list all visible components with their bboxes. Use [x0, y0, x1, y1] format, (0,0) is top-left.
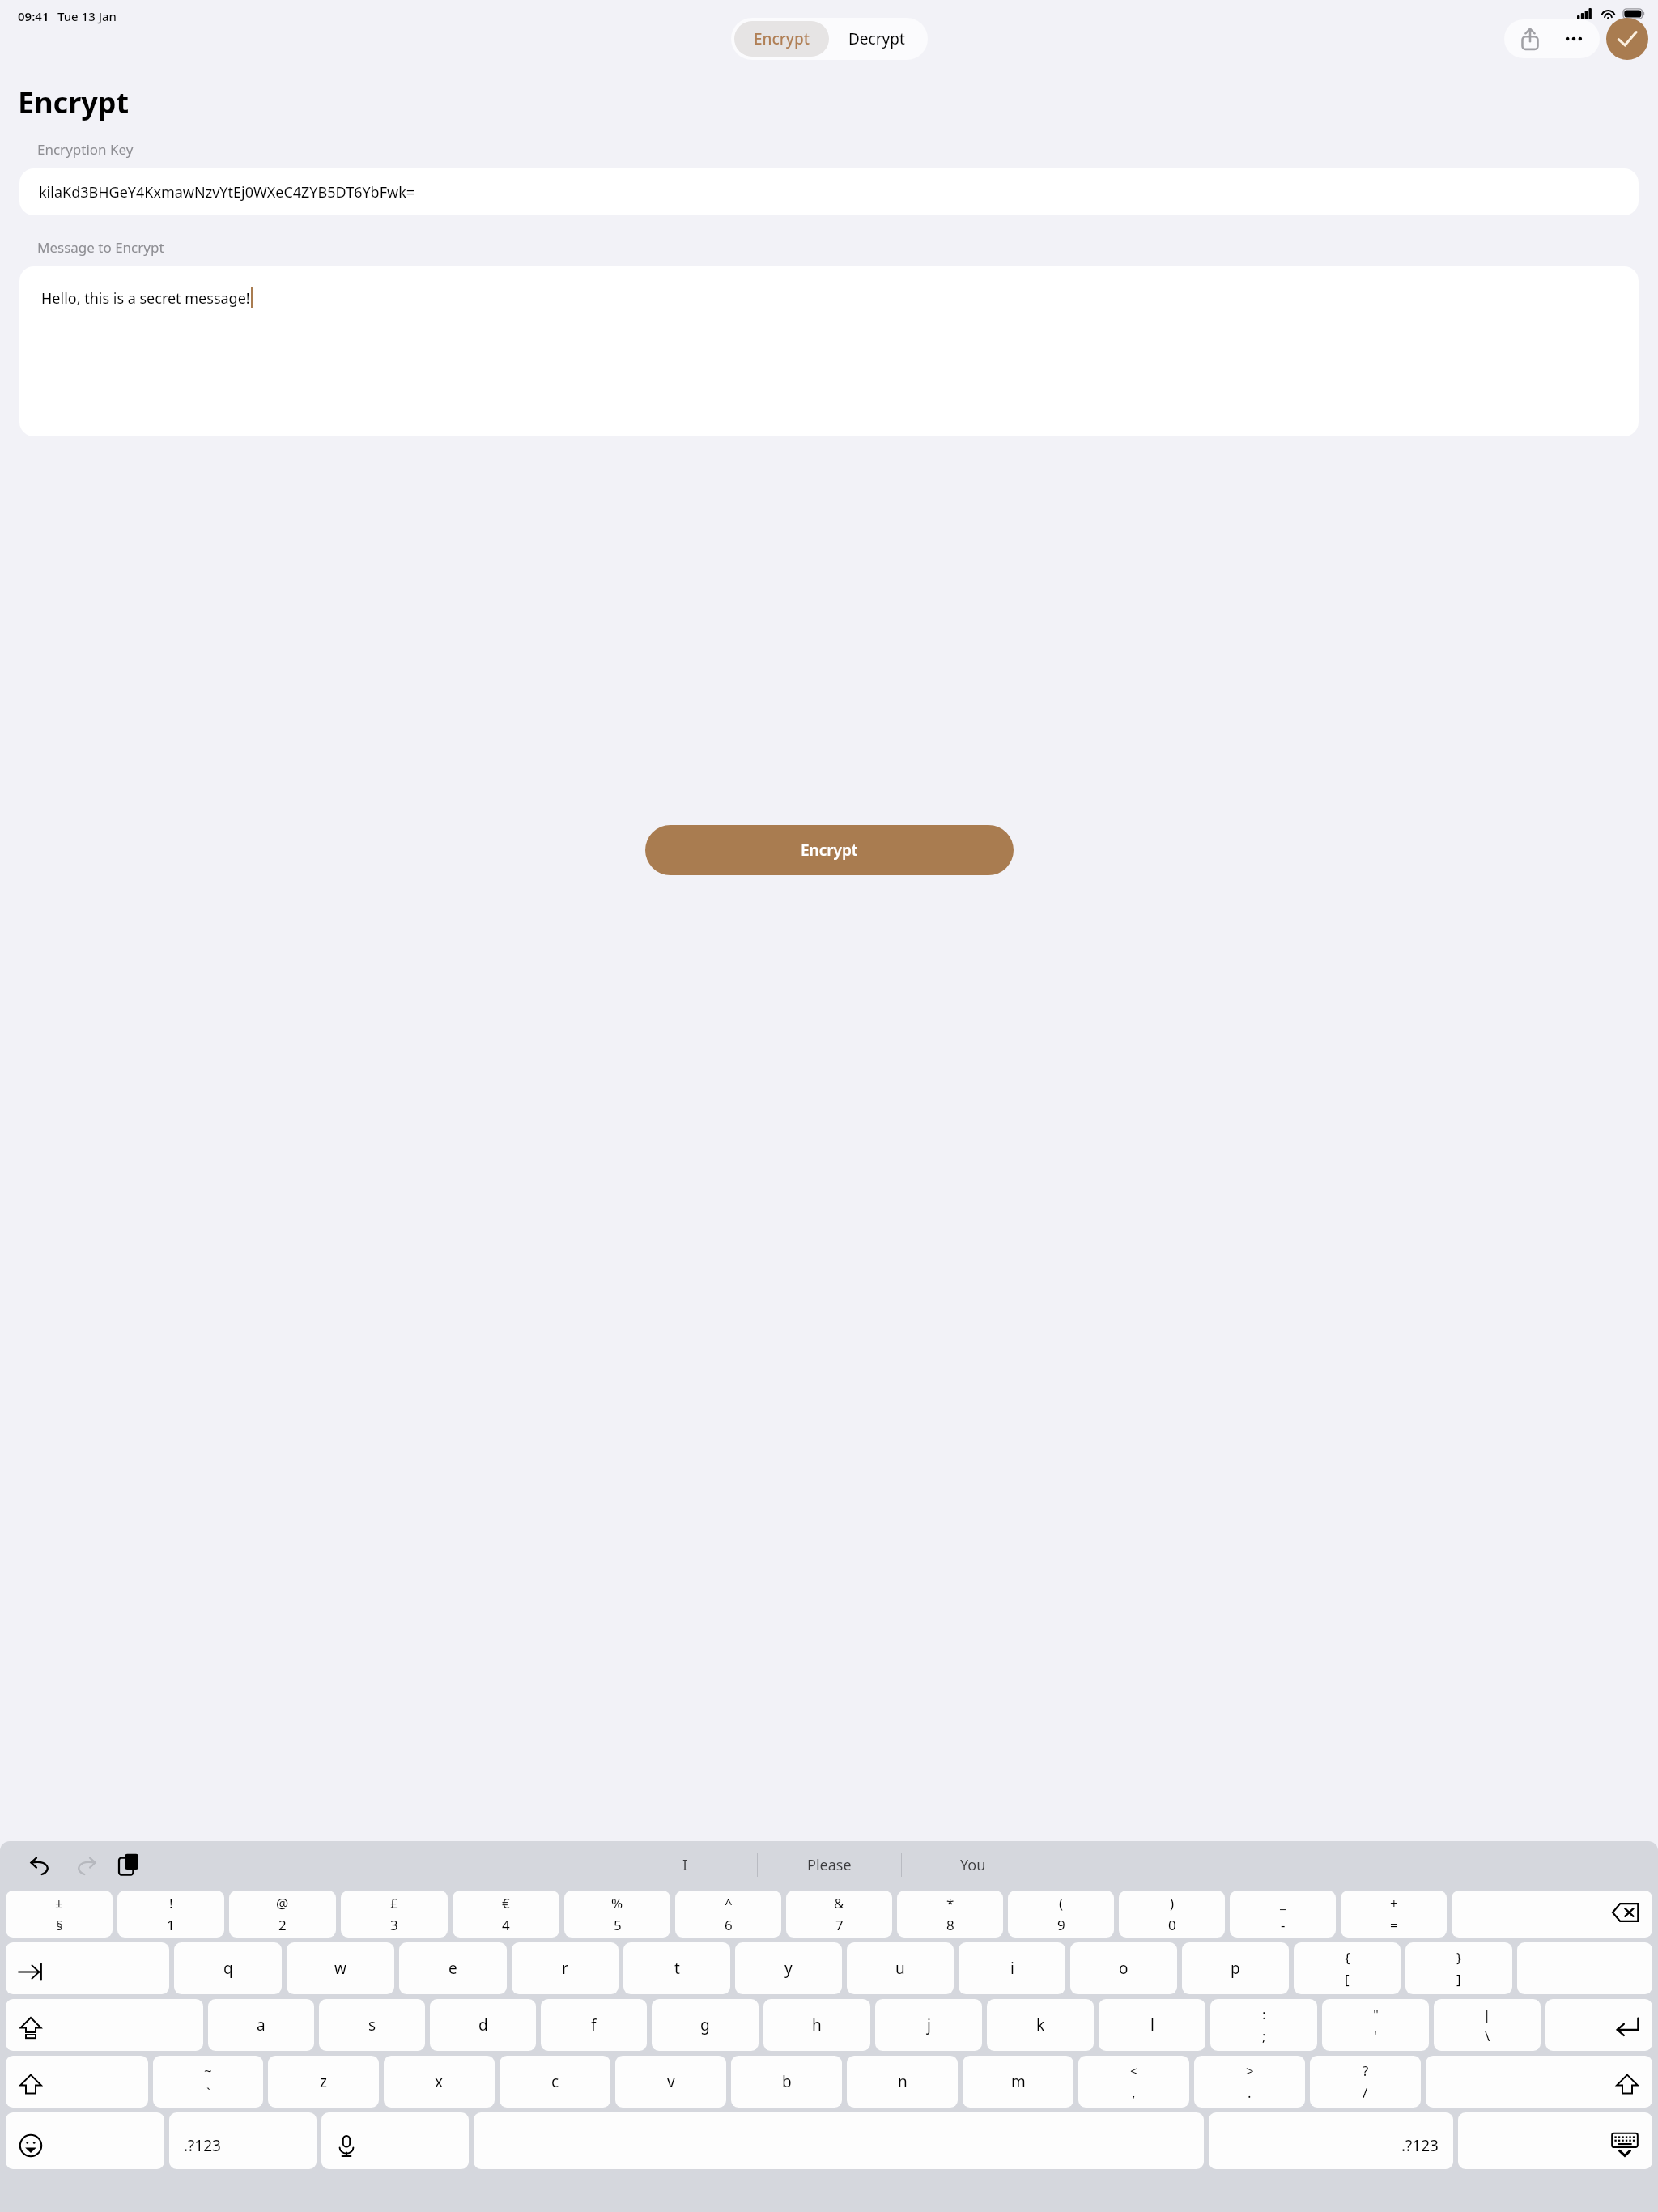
- button[interactable]: Share: [1512, 21, 1548, 57]
- button[interactable]: More options: [1556, 21, 1592, 57]
- staticText: 8: [946, 1916, 954, 1934]
- button[interactable]: <: [1078, 2056, 1189, 2108]
- button[interactable]: v: [615, 2056, 726, 2108]
- button[interactable]: z: [268, 2056, 379, 2108]
- staticText: !: [169, 1894, 173, 1912]
- button[interactable]: b: [731, 2056, 842, 2108]
- staticText: n: [898, 2071, 908, 2092]
- button[interactable]: {: [1294, 1942, 1401, 1994]
- button[interactable]: >: [1194, 2056, 1305, 2108]
- button[interactable]: q: [174, 1942, 282, 1994]
- staticText: @: [276, 1894, 289, 1912]
- button[interactable]: o: [1070, 1942, 1177, 1994]
- staticText: l: [1150, 2014, 1154, 2035]
- button[interactable]: n: [847, 2056, 958, 2108]
- button[interactable]: [474, 2112, 1204, 2169]
- button[interactable]: emoji: [6, 2112, 164, 2169]
- button[interactable]: [1517, 1942, 1652, 1994]
- button[interactable]: ?: [1310, 2056, 1421, 2108]
- button[interactable]: }: [1405, 1942, 1512, 1994]
- button[interactable]: £: [341, 1891, 448, 1938]
- button[interactable]: u: [847, 1942, 954, 1994]
- button[interactable]: .?123: [1209, 2112, 1453, 2169]
- button[interactable]: c: [500, 2056, 610, 2108]
- button[interactable]: %: [564, 1891, 670, 1938]
- button[interactable]: r: [512, 1942, 619, 1994]
- button[interactable]: Undo: [23, 1846, 60, 1883]
- button[interactable]: h: [763, 1999, 870, 2051]
- button[interactable]: (: [1008, 1891, 1114, 1938]
- button[interactable]: shift: [6, 2056, 148, 2108]
- button[interactable]: a: [208, 1999, 314, 2051]
- button[interactable]: j: [875, 1999, 982, 2051]
- button[interactable]: w: [287, 1942, 394, 1994]
- staticText: ^: [725, 1894, 733, 1912]
- button[interactable]: hidekb: [1458, 2112, 1652, 2169]
- button[interactable]: Hello, this is a secret message!: [19, 266, 1639, 436]
- button[interactable]: tab: [6, 1942, 169, 1994]
- staticText: ,: [1132, 2083, 1136, 2102]
- button[interactable]: :: [1210, 1999, 1317, 2051]
- staticText: <: [1130, 2061, 1138, 2080]
- staticText: d: [478, 2014, 488, 2035]
- button[interactable]: .?123: [169, 2112, 317, 2169]
- button[interactable]: Paste: [110, 1846, 147, 1883]
- staticText: 7: [835, 1916, 844, 1934]
- button[interactable]: @: [229, 1891, 336, 1938]
- staticText: 0: [1168, 1916, 1176, 1934]
- button[interactable]: ±: [6, 1891, 113, 1938]
- staticText: .?123: [1401, 2135, 1439, 2156]
- button[interactable]: You: [901, 1841, 1045, 1888]
- button[interactable]: Done: [1606, 18, 1648, 60]
- staticText: {: [1345, 1948, 1350, 1967]
- button[interactable]: ): [1119, 1891, 1225, 1938]
- staticText: 6: [725, 1916, 733, 1934]
- button[interactable]: !: [117, 1891, 224, 1938]
- button[interactable]: _: [1230, 1891, 1336, 1938]
- button[interactable]: Please: [757, 1841, 901, 1888]
- button[interactable]: ^: [675, 1891, 781, 1938]
- button[interactable]: Encrypt: [734, 21, 829, 57]
- button[interactable]: d: [430, 1999, 536, 2051]
- button[interactable]: e: [399, 1942, 507, 1994]
- button[interactable]: g: [652, 1999, 759, 2051]
- button[interactable]: €: [453, 1891, 559, 1938]
- button[interactable]: l: [1099, 1999, 1205, 2051]
- button[interactable]: kilaKd3BHGeY4KxmawNzvYtEj0WXeC4ZYB5DT6Yb…: [19, 168, 1639, 215]
- button[interactable]: k: [987, 1999, 1094, 2051]
- button[interactable]: Redo: [66, 1846, 104, 1883]
- staticText: ±: [55, 1894, 63, 1912]
- button[interactable]: mic: [321, 2112, 469, 2169]
- button[interactable]: ~: [153, 2056, 263, 2108]
- staticText: w: [334, 1958, 346, 1979]
- button[interactable]: Decrypt: [829, 21, 925, 57]
- button[interactable]: caps: [6, 1999, 203, 2051]
- button[interactable]: m: [963, 2056, 1073, 2108]
- button[interactable]: x: [384, 2056, 495, 2108]
- staticText: 4: [502, 1916, 510, 1934]
- button[interactable]: Encrypt: [645, 825, 1014, 875]
- staticText: }: [1456, 1948, 1462, 1967]
- button[interactable]: shift: [1426, 2056, 1652, 2108]
- staticText: 2: [278, 1916, 287, 1934]
- button[interactable]: p: [1182, 1942, 1289, 1994]
- button[interactable]: ": [1322, 1999, 1429, 2051]
- staticText: 9: [1057, 1916, 1065, 1934]
- staticText: 09:41: [18, 8, 49, 24]
- button[interactable]: I: [613, 1841, 757, 1888]
- staticText: z: [320, 2071, 327, 2092]
- button[interactable]: return: [1545, 1999, 1652, 2051]
- button[interactable]: *: [897, 1891, 1003, 1938]
- button[interactable]: s: [319, 1999, 425, 2051]
- button[interactable]: +: [1341, 1891, 1447, 1938]
- button[interactable]: i: [959, 1942, 1065, 1994]
- staticText: |: [1483, 2005, 1491, 2023]
- button[interactable]: &: [786, 1891, 892, 1938]
- button[interactable]: y: [735, 1942, 842, 1994]
- button[interactable]: t: [623, 1942, 730, 1994]
- staticText: :: [1262, 2005, 1266, 2023]
- button[interactable]: f: [541, 1999, 647, 2051]
- button[interactable]: backspace: [1452, 1891, 1652, 1938]
- button[interactable]: |: [1434, 1999, 1541, 2051]
- staticText: x: [435, 2071, 444, 2092]
